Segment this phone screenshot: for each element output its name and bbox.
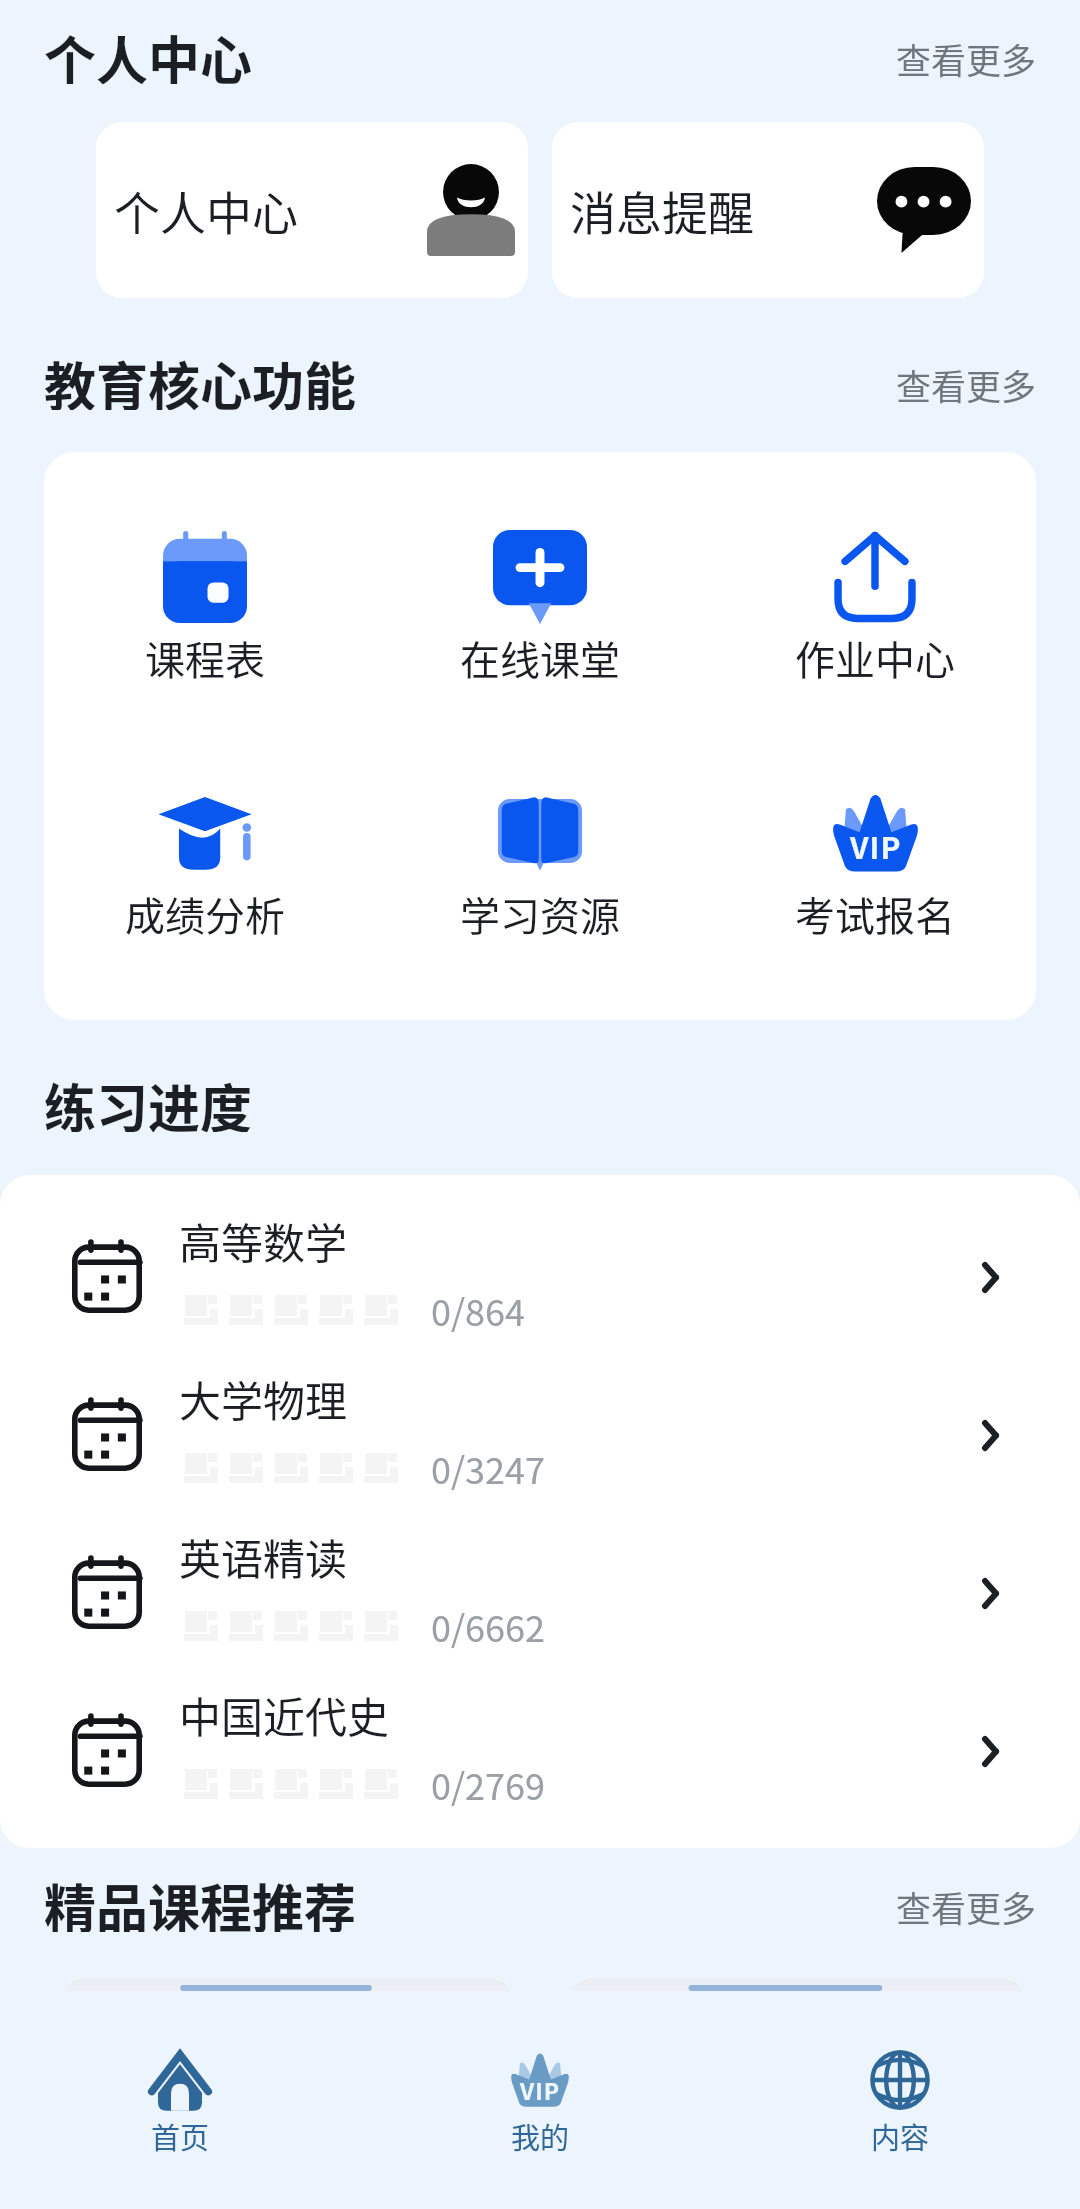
button[interactable]: 查看更多	[896, 33, 1037, 84]
staticText: 在线课堂	[460, 629, 620, 687]
staticText: 课程表	[145, 629, 265, 687]
button[interactable]: 查看更多	[896, 359, 1037, 410]
button[interactable]: 首页	[0, 1991, 360, 2209]
other: Open	[982, 1578, 999, 1609]
staticText: 内容	[871, 2115, 930, 2157]
staticText: 首页	[151, 2115, 210, 2157]
staticText: 精品课程推荐	[44, 1868, 357, 1932]
staticText: 个人中心	[114, 177, 298, 244]
other: Open	[982, 1420, 999, 1451]
staticText: 练习进度	[44, 1068, 253, 1132]
button[interactable]	[569, 1978, 1025, 2098]
staticText: 英语精读	[179, 1526, 348, 1587]
staticText: 查看更多	[896, 359, 1037, 410]
button[interactable]: VIP	[755, 786, 995, 943]
other: Open	[982, 1262, 999, 1293]
button[interactable]: 课程表	[85, 530, 325, 687]
staticText: 成绩分析	[125, 885, 285, 943]
button[interactable]: 查看更多	[896, 1881, 1037, 1932]
staticText: 个人中心	[44, 20, 253, 84]
button[interactable]: 学习资源	[420, 786, 660, 943]
staticText: 中国近代史	[179, 1684, 390, 1745]
button[interactable]: 个人中心	[96, 122, 528, 298]
button[interactable]: 内容	[720, 1991, 1080, 2209]
staticText: 查看更多	[896, 1881, 1037, 1932]
staticText: 我的	[511, 2115, 570, 2157]
other: Open	[982, 1736, 999, 1767]
staticText: 0/3247	[431, 1442, 546, 1494]
button[interactable]: 在线课堂	[420, 530, 660, 687]
button[interactable]: 中国近代史	[0, 1672, 1080, 1830]
button[interactable]: 英语精读	[0, 1514, 1080, 1672]
other: Profile	[427, 164, 515, 256]
staticText: 0/6662	[431, 1600, 546, 1652]
staticText: 大学物理	[179, 1368, 348, 1429]
staticText: 考试报名	[795, 885, 955, 943]
button[interactable]: 成绩分析	[85, 786, 325, 943]
staticText: VIP	[850, 824, 902, 867]
button[interactable]: 高等数学	[0, 1198, 1080, 1356]
button[interactable]: 消息提醒	[552, 122, 984, 298]
button[interactable]: VIP	[360, 1991, 720, 2209]
other: Messages	[877, 167, 971, 253]
button[interactable]	[62, 1978, 513, 2098]
button[interactable]: 大学物理	[0, 1356, 1080, 1514]
staticText: 高等数学	[179, 1210, 348, 1271]
staticText: 查看更多	[896, 33, 1037, 84]
staticText: 教育核心功能	[44, 346, 357, 410]
staticText: 消息提醒	[570, 177, 754, 244]
staticText: 作业中心	[795, 629, 955, 687]
staticText: 0/864	[431, 1284, 526, 1336]
button[interactable]: 作业中心	[755, 530, 995, 687]
staticText: 学习资源	[460, 885, 620, 943]
staticText: 0/2769	[431, 1758, 546, 1810]
staticText: VIP	[520, 2073, 561, 2106]
